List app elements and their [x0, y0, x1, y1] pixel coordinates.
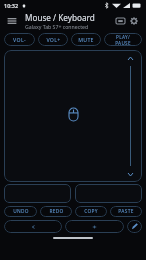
button[interactable]: PLAY/: [104, 33, 142, 46]
staticText: PAUSE: [115, 40, 131, 46]
button[interactable]: Scroll up: [126, 54, 134, 62]
button[interactable]: Move left: [4, 220, 62, 233]
button[interactable]: VOL+: [38, 33, 68, 46]
button[interactable]: MUTE: [71, 33, 101, 46]
button[interactable]: REDO: [40, 206, 72, 217]
staticText: UNDO: [13, 208, 29, 215]
button[interactable]: Touchpad: [4, 50, 142, 182]
staticText: VOL+: [46, 36, 61, 43]
staticText: PASTE: [118, 208, 134, 215]
button[interactable]: Cast: [113, 14, 127, 28]
button[interactable]: Scroll down: [126, 170, 134, 178]
button[interactable]: Settings: [127, 14, 141, 28]
staticText: Mouse / Keyboard: [25, 12, 95, 23]
staticText: REDO: [49, 208, 64, 215]
button[interactable]: VOL-: [4, 33, 35, 46]
button[interactable]: COPY: [75, 206, 107, 217]
button[interactable]: Right click: [75, 184, 142, 203]
staticText: Galaxy Tab S7+ connected: [25, 23, 89, 30]
staticText: PLAY/: [116, 34, 130, 40]
staticText: 10:32: [4, 2, 19, 9]
button[interactable]: PASTE: [110, 206, 142, 217]
button[interactable]: Left click: [4, 184, 71, 203]
button[interactable]: Menu: [5, 14, 19, 28]
staticText: VOL-: [13, 36, 26, 43]
staticText: COPY: [84, 208, 98, 215]
button[interactable]: UNDO: [4, 206, 37, 217]
button[interactable]: Edit: [127, 220, 142, 233]
staticText: MUTE: [78, 36, 94, 43]
button[interactable]: Move right: [65, 220, 124, 233]
